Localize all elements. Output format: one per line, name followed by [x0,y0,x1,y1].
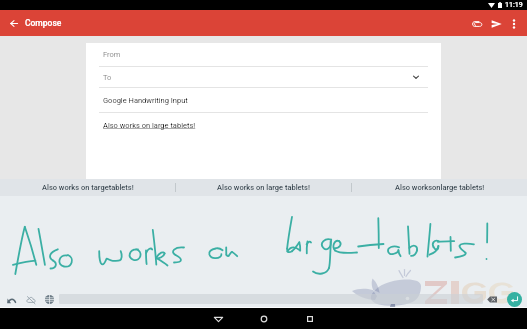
button[interactable]: Also worksonlarge tablets! [352,179,527,196]
button[interactable]: Offline mode [23,292,38,307]
button[interactable]: Also works on large tablets! [176,179,351,196]
button[interactable]: Navigate up [6,15,22,31]
staticText: Compose [25,18,62,28]
button[interactable]: Also works on targetablets! [0,179,175,196]
button[interactable]: Attach file [467,14,486,33]
button[interactable]: Enter [507,292,522,307]
button[interactable]: Backspace [485,293,498,305]
button[interactable]: Space [59,294,483,304]
staticText: 11:19 [505,1,523,9]
staticText: Also works on targetablets! [42,183,134,192]
button[interactable]: Send [487,14,506,33]
button[interactable]: More options [506,16,522,32]
staticText: From [103,50,121,59]
button[interactable]: Recent apps [299,308,321,329]
button[interactable]: Undo [4,292,19,307]
staticText: To [103,73,112,82]
button[interactable]: Home [253,308,275,329]
staticText: Also works on large tablets! [103,121,196,130]
staticText: Also works on large tablets! [217,183,310,192]
button[interactable]: Change language [42,292,57,307]
staticText: Google Handwriting Input [103,96,188,105]
staticText: Also worksonlarge tablets! [395,183,485,192]
button[interactable]: Back [207,308,229,329]
